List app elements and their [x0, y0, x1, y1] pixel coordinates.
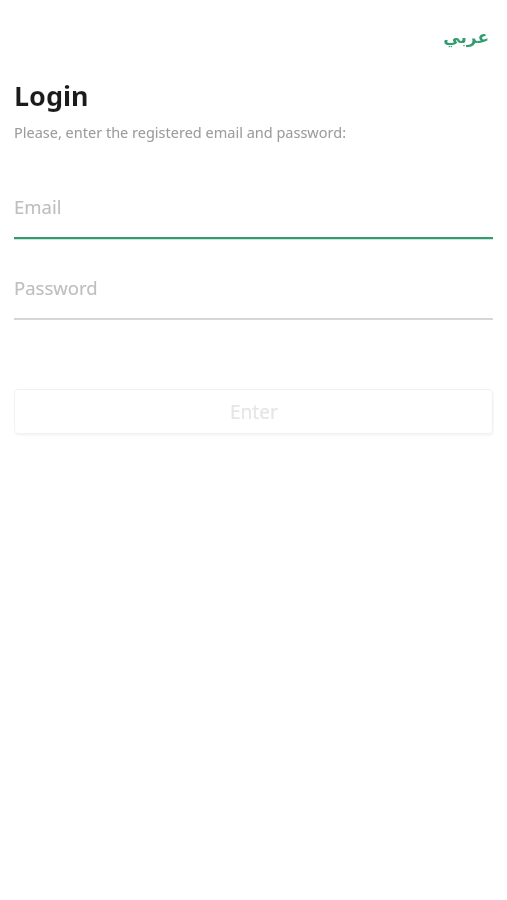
- button[interactable]: Password input field: [14, 270, 493, 321]
- staticText: Login: [14, 77, 89, 114]
- button[interactable]: Email input field: [14, 189, 493, 240]
- staticText: Please, enter the registered email and p…: [14, 122, 347, 142]
- staticText: Email: [14, 194, 62, 219]
- staticText: عربي: [443, 27, 489, 47]
- button[interactable]: Switch language to Arabic: [439, 24, 493, 50]
- staticText: Enter: [230, 399, 278, 425]
- button[interactable]: Enter: [14, 389, 493, 434]
- staticText: Password: [14, 275, 98, 300]
